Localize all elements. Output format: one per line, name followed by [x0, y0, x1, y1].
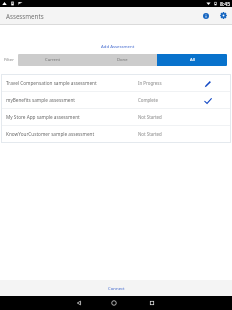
- button[interactable]: Done: [87, 54, 157, 66]
- staticText: Not Started: [138, 131, 162, 137]
- staticText: Add Assessment: [101, 43, 135, 49]
- button[interactable]: Add Assessment: [97, 42, 139, 50]
- button[interactable]: Home: [104, 296, 124, 310]
- staticText: Done: [117, 57, 128, 63]
- staticText: Filter: [4, 57, 14, 63]
- button[interactable]: All: [157, 54, 227, 66]
- button[interactable]: Settings: [218, 10, 229, 21]
- button[interactable]: Back: [69, 296, 89, 310]
- staticText: In Progress: [138, 80, 162, 86]
- staticText: Not Started: [138, 114, 162, 120]
- staticText: myBenefits sample assessment: [6, 97, 76, 103]
- staticText: 8:45: [220, 0, 231, 7]
- button[interactable]: Current: [18, 54, 87, 66]
- button[interactable]: KnowYourCustomer sample assessment: [1, 126, 231, 142]
- staticText: Assessments: [6, 12, 44, 20]
- button[interactable]: My Store App sample assessment: [1, 109, 231, 125]
- staticText: Complete: [138, 97, 158, 103]
- staticText: Travel Compensation sample assessment: [6, 80, 97, 86]
- button[interactable]: Connect: [104, 284, 129, 292]
- button[interactable]: Information: [200, 10, 211, 21]
- staticText: All: [190, 57, 195, 63]
- staticText: My Store App sample assessment: [6, 114, 80, 120]
- button[interactable]: Travel Compensation sample assessment: [1, 75, 231, 91]
- staticText: Current: [45, 57, 61, 63]
- staticText: Connect: [108, 285, 125, 291]
- button[interactable]: myBenefits sample assessment: [1, 92, 231, 108]
- staticText: KnowYourCustomer sample assessment: [6, 131, 95, 137]
- button[interactable]: Recent apps: [142, 296, 162, 310]
